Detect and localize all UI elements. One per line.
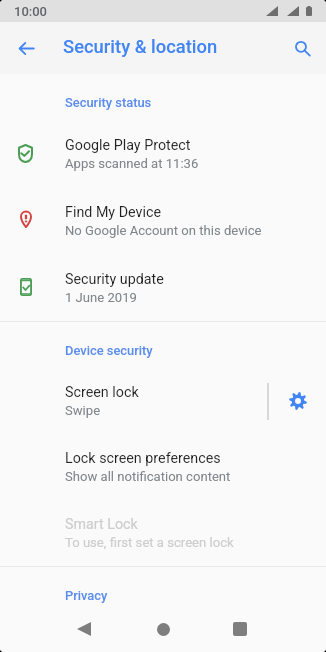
button[interactable]: Recent apps — [216, 610, 264, 652]
staticText: Security status — [65, 95, 152, 110]
staticText: Security & location — [63, 36, 218, 58]
button[interactable]: Home — [139, 610, 187, 652]
staticText: Show all notification content — [65, 469, 231, 484]
staticText: Apps scanned at 11:36 — [65, 156, 199, 171]
staticText: Screen lock — [65, 384, 139, 401]
staticText: Security update — [65, 271, 164, 288]
button[interactable]: Google Play Protect — [0, 120, 326, 187]
button[interactable]: Back — [60, 610, 108, 652]
staticText: Privacy — [65, 588, 108, 603]
button[interactable]: Find My Device — [0, 187, 326, 254]
staticText: Lock screen preferences — [65, 450, 221, 467]
button[interactable]: Lock screen preferences — [0, 434, 326, 500]
button[interactable]: Screen lock settings — [269, 368, 326, 434]
staticText: Find My Device — [65, 204, 162, 221]
staticText: Google Play Protect — [65, 137, 191, 154]
staticText: Device security — [65, 343, 153, 358]
button[interactable]: Search — [284, 30, 320, 66]
button[interactable]: Smart Lock — [0, 500, 326, 566]
button[interactable]: Navigate up — [8, 30, 44, 66]
button[interactable]: Security update — [0, 254, 326, 321]
staticText: 10:00 — [14, 4, 47, 19]
staticText: Swipe — [65, 403, 101, 418]
staticText: 1 June 2019 — [65, 290, 137, 305]
staticText: Smart Lock — [65, 516, 138, 533]
staticText: No Google Account on this device — [65, 223, 262, 238]
button[interactable]: Screen lock — [0, 368, 326, 434]
staticText: To use, first set a screen lock — [65, 535, 234, 550]
